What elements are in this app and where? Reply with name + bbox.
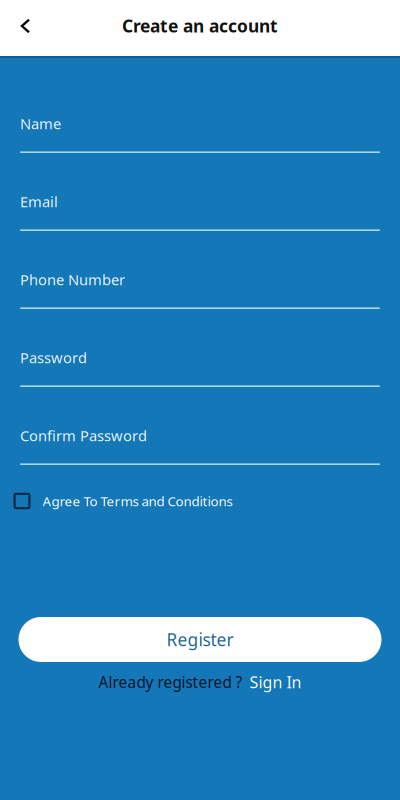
staticText: Create an account — [122, 14, 278, 38]
staticText: Name — [20, 113, 61, 133]
staticText: Sign In — [249, 671, 301, 693]
button[interactable]: Sign In — [249, 671, 301, 693]
button[interactable]: Back — [3, 4, 47, 48]
staticText: Phone Number — [20, 269, 125, 289]
staticText: Agree To Terms and Conditions — [42, 492, 232, 510]
button[interactable]: Agree To Terms and Conditions — [20, 486, 380, 516]
staticText: Email — [20, 191, 58, 211]
button[interactable]: Register — [20, 617, 380, 662]
staticText: Already registered ? — [98, 672, 242, 692]
staticText: Confirm Password — [20, 425, 147, 445]
staticText: Password — [20, 347, 87, 367]
staticText: Register — [166, 628, 233, 651]
